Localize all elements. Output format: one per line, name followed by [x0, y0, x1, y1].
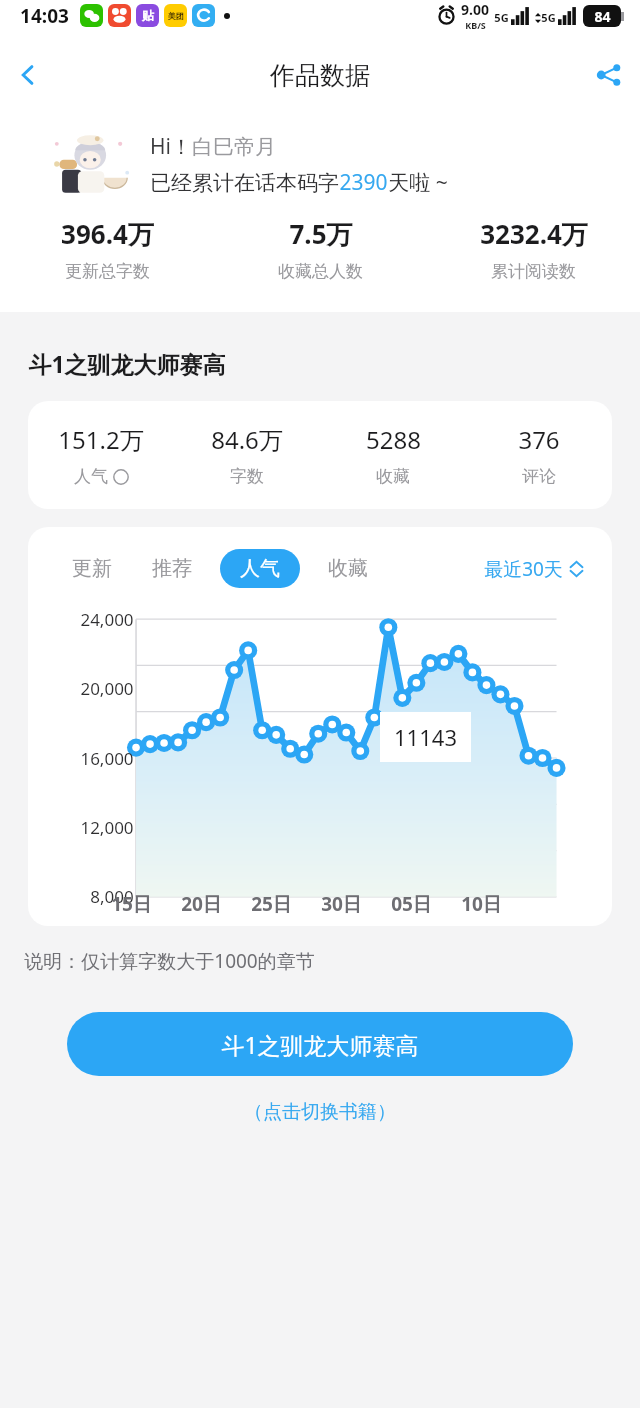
staticText: 9.00 — [461, 0, 489, 19]
staticText: 美团 — [168, 11, 184, 21]
button[interactable]: Share — [578, 44, 640, 106]
staticText: 收藏 — [328, 556, 368, 581]
staticText: 评论 — [522, 466, 556, 487]
staticText: 396.4万 — [61, 216, 154, 252]
staticText: 376 — [518, 423, 560, 456]
staticText: 7.5万 — [289, 216, 353, 252]
staticText: 贴 — [142, 8, 154, 23]
staticText: 24,000 — [80, 608, 134, 631]
staticText: Hi！ — [150, 132, 192, 161]
staticText: 15日 — [111, 891, 152, 917]
staticText: 84 — [594, 7, 611, 26]
staticText: KB/S — [465, 19, 486, 31]
button[interactable]: 推荐 — [146, 549, 198, 588]
staticText: 斗1之驯龙大师赛高 — [28, 348, 226, 379]
button[interactable]: 人气 — [220, 549, 300, 588]
staticText: 5G — [494, 10, 509, 25]
staticText: 30日 — [321, 891, 362, 917]
staticText: 3232.4万 — [480, 216, 588, 252]
staticText: 说明：仅计算字数大于1000的章节 — [24, 948, 315, 974]
button[interactable]: Back — [0, 44, 56, 106]
button[interactable]: 最近30天 — [480, 552, 588, 586]
button[interactable]: 斗1之驯龙大师赛高 — [67, 1012, 573, 1076]
staticText: 最近30天 — [484, 556, 563, 582]
button[interactable]: 收藏 — [322, 549, 374, 588]
staticText: 斗1之驯龙大师赛高 — [221, 1029, 419, 1060]
button[interactable]: 151.2万 — [28, 401, 612, 509]
staticText: 20,000 — [80, 677, 134, 700]
staticText: 20日 — [181, 891, 222, 917]
staticText: 收藏 — [376, 466, 410, 487]
staticText: 05日 — [391, 891, 432, 917]
staticText: 更新 — [72, 556, 112, 581]
staticText: （点击切换书籍） — [244, 1100, 396, 1124]
staticText: 天啦 ~ — [388, 168, 448, 197]
staticText: 累计阅读数 — [491, 261, 576, 282]
staticText: 字数 — [230, 466, 264, 487]
staticText: 8,000 — [90, 885, 134, 908]
staticText: 84.6万 — [211, 423, 283, 456]
staticText: 人气 — [74, 466, 108, 487]
staticText: 151.2万 — [58, 423, 144, 456]
staticText: 11143 — [394, 722, 457, 752]
staticText: 25日 — [251, 891, 292, 917]
staticText: 14:03 — [20, 3, 69, 29]
staticText: 收藏总人数 — [278, 261, 363, 282]
staticText: 16,000 — [80, 747, 134, 770]
staticText: 5288 — [366, 423, 421, 456]
staticText: 5G — [541, 10, 556, 25]
staticText: 作品数据 — [270, 60, 370, 91]
staticText: 2390 — [339, 168, 388, 197]
button[interactable]: （点击切换书籍） — [236, 1096, 404, 1128]
staticText: 白巳帝月 — [192, 134, 276, 160]
staticText: 更新总字数 — [65, 261, 150, 282]
staticText: 10日 — [461, 891, 502, 917]
staticText: 已经累计在话本码字 — [150, 170, 339, 196]
staticText: 推荐 — [152, 556, 192, 581]
staticText: 人气 — [240, 556, 280, 581]
button[interactable]: 更新 — [66, 549, 118, 588]
staticText: 12,000 — [80, 816, 134, 839]
